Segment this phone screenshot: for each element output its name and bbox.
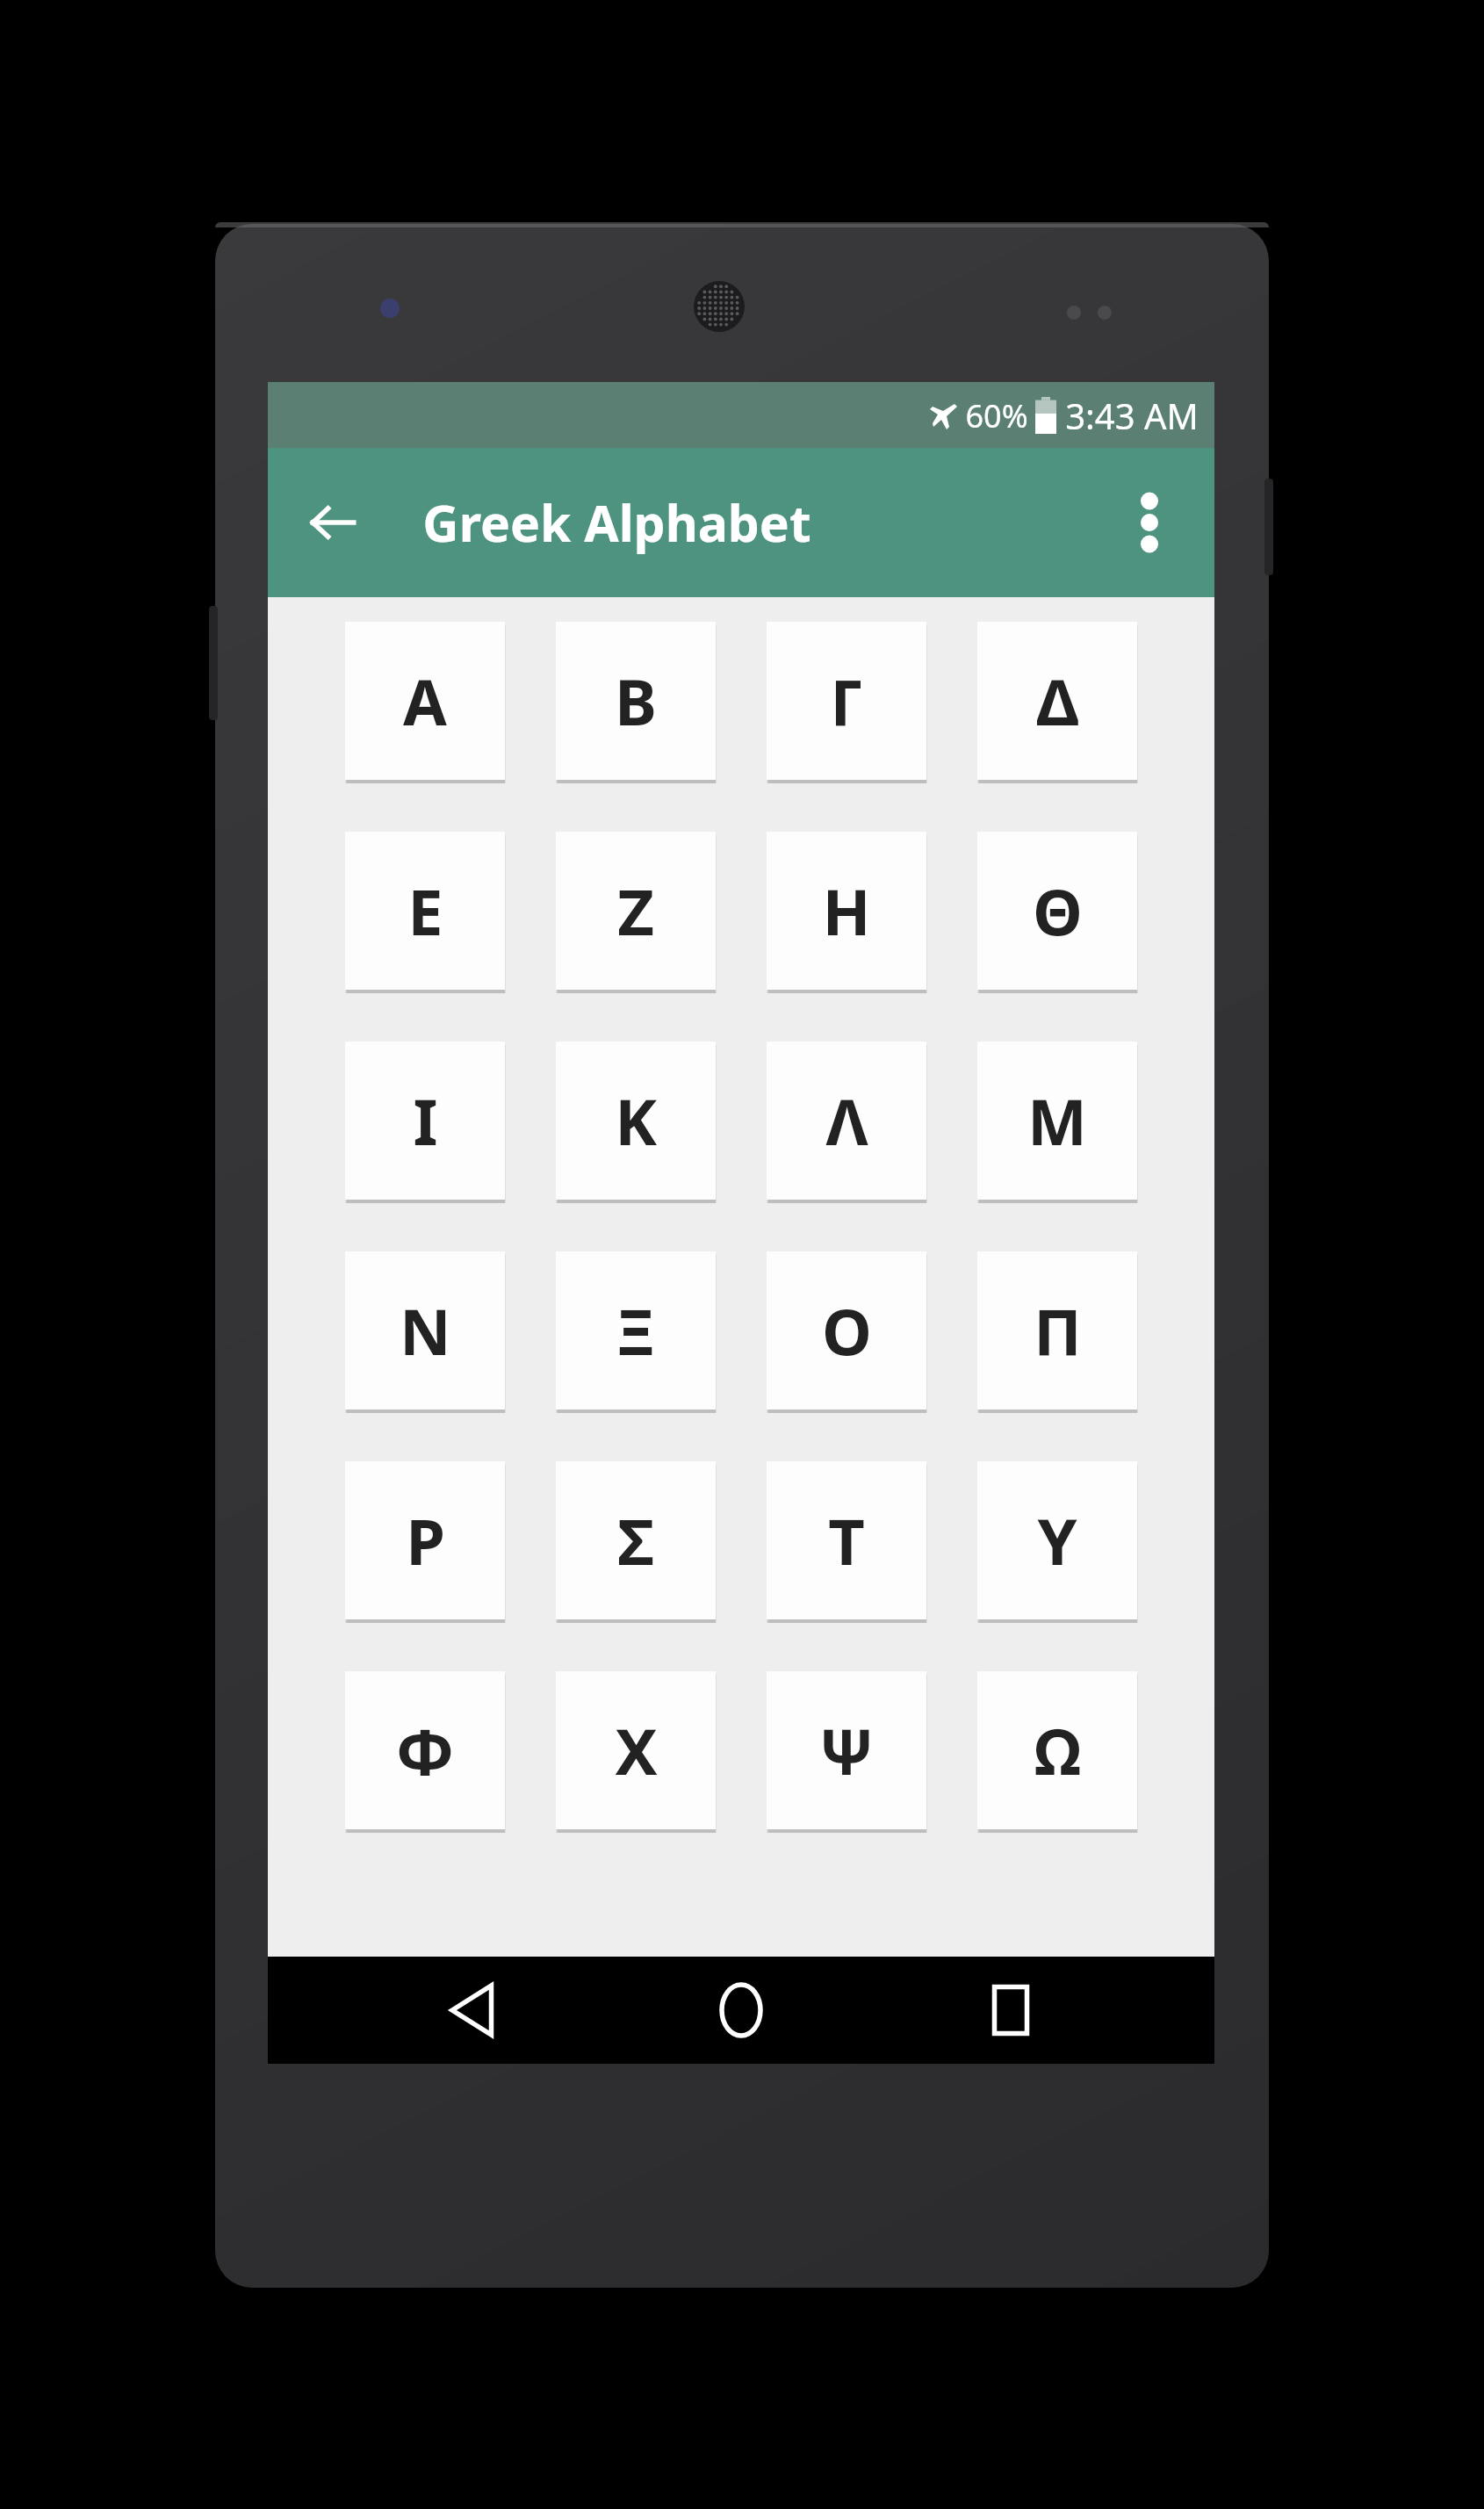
staticText: Σ [617,1497,654,1583]
staticText: 3:43 AM [1065,392,1199,439]
staticText: Τ [828,1497,865,1583]
staticText: Greek Alphabet [422,488,811,557]
staticText: Υ [1037,1497,1077,1583]
staticText: Ε [407,868,443,954]
button[interactable]: Γ [767,622,926,780]
staticText: Α [403,658,447,744]
button[interactable]: Back [406,1957,537,2064]
button[interactable]: Back [291,480,375,565]
button[interactable]: Β [556,622,716,780]
button[interactable]: Σ [556,1461,716,1619]
button[interactable]: Ρ [345,1461,505,1619]
staticText: Φ [396,1707,454,1793]
staticText: Κ [615,1078,657,1164]
button[interactable]: Ξ [556,1251,716,1410]
button[interactable]: Χ [556,1671,716,1829]
button[interactable]: Ζ [556,832,716,990]
staticText: Λ [825,1078,868,1164]
button[interactable]: Recent apps [945,1957,1077,2064]
staticText: Β [615,658,657,744]
staticText: Ι [413,1078,438,1164]
button[interactable]: Ε [345,832,505,990]
button[interactable]: Π [977,1251,1137,1410]
button[interactable]: Ι [345,1042,505,1200]
staticText: Δ [1036,658,1079,744]
staticText: Θ [1033,868,1083,954]
button[interactable]: Υ [977,1461,1137,1619]
staticText: Ο [822,1287,872,1373]
staticText: Ξ [616,1287,656,1373]
button[interactable]: Μ [977,1042,1137,1200]
staticText: Μ [1027,1078,1087,1164]
staticText: Ν [400,1287,450,1373]
button[interactable]: Ο [767,1251,926,1410]
button[interactable]: Ψ [767,1671,926,1829]
staticText: Η [822,868,871,954]
button[interactable]: Κ [556,1042,716,1200]
button[interactable]: Λ [767,1042,926,1200]
button[interactable]: Ω [977,1671,1137,1829]
button[interactable]: Ν [345,1251,505,1410]
staticText: Ω [1034,1707,1082,1793]
button[interactable]: Τ [767,1461,926,1619]
staticText: Ψ [818,1707,875,1793]
staticText: Π [1034,1287,1082,1373]
button[interactable]: Δ [977,622,1137,780]
staticText: Γ [830,658,864,744]
button[interactable]: Φ [345,1671,505,1829]
staticText: 60% [965,394,1028,437]
button[interactable]: Α [345,622,505,780]
staticText: Χ [615,1707,658,1793]
button[interactable]: Θ [977,832,1137,990]
button[interactable]: More options [1107,480,1192,565]
button[interactable]: Home [675,1957,807,2064]
staticText: Ζ [617,868,654,954]
button[interactable]: Η [767,832,926,990]
staticText: Ρ [406,1497,445,1583]
